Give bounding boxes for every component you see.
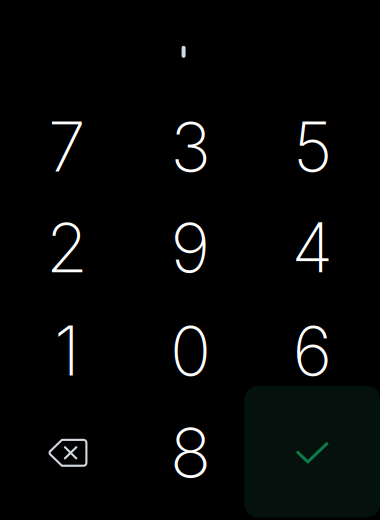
button[interactable]: 2 bbox=[6, 198, 128, 298]
button[interactable]: Confirm passcode bbox=[244, 386, 380, 518]
staticText: 6 bbox=[292, 310, 332, 392]
button[interactable]: Delete bbox=[7, 403, 129, 503]
button[interactable]: 6 bbox=[251, 301, 373, 401]
staticText: 3 bbox=[170, 106, 210, 188]
button[interactable]: 8 bbox=[129, 403, 251, 503]
button[interactable]: 0 bbox=[129, 301, 251, 401]
staticText: 9 bbox=[170, 206, 210, 289]
button[interactable]: 9 bbox=[129, 198, 251, 298]
button[interactable]: 3 bbox=[129, 97, 251, 197]
button[interactable]: 7 bbox=[6, 97, 128, 197]
staticText: 2 bbox=[46, 206, 88, 289]
staticText: 1 bbox=[54, 310, 80, 392]
button[interactable]: 5 bbox=[251, 97, 373, 197]
staticText: 8 bbox=[170, 411, 211, 494]
staticText: 0 bbox=[170, 310, 211, 392]
button[interactable]: 4 bbox=[251, 198, 373, 298]
button[interactable]: 1 bbox=[6, 301, 128, 401]
staticText: 5 bbox=[293, 106, 332, 188]
staticText: 7 bbox=[48, 106, 86, 188]
staticText: 4 bbox=[291, 206, 333, 289]
